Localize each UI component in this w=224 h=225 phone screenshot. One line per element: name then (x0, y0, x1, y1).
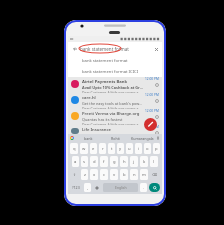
staticText: c (103, 172, 106, 178)
staticText: t (111, 146, 113, 152)
staticText: bank statement format (80, 46, 129, 52)
button[interactable]: d (90, 156, 98, 167)
staticText: o (146, 146, 149, 152)
staticText: s (83, 159, 86, 165)
staticText: k (143, 159, 146, 165)
button[interactable]: Preeti Verma via Bharge.org (68, 109, 162, 125)
staticText: , (87, 185, 89, 191)
staticText: z (84, 172, 86, 178)
button[interactable]: t (108, 143, 115, 154)
staticText: Dear Customer, A little one covers ago. … (82, 90, 143, 93)
button[interactable]: ⇧ (70, 169, 79, 180)
staticText: a (74, 159, 77, 165)
staticText: 12:00 PM (145, 93, 159, 97)
staticText: g (113, 159, 116, 165)
button[interactable]: bank (74, 136, 102, 141)
button[interactable]: j (130, 156, 138, 167)
staticText: Rohit (111, 136, 120, 141)
staticText: Kumarangala (131, 136, 154, 141)
staticText: Life Insurance (82, 127, 111, 133)
staticText: x (93, 172, 96, 178)
staticText: q (73, 146, 76, 152)
staticText: Preeti Verma via Bharge.org (82, 111, 140, 117)
staticText: 12:00 PM (145, 109, 159, 113)
staticText: l (153, 159, 155, 165)
staticText: v (113, 172, 116, 178)
button[interactable]: Voice input (93, 183, 101, 192)
button[interactable]: f (100, 156, 108, 167)
button[interactable]: x (90, 169, 98, 180)
staticText: n (133, 172, 136, 178)
button[interactable]: i (135, 143, 142, 154)
staticText: i (138, 146, 140, 152)
button[interactable]: care.hl (68, 93, 162, 109)
button[interactable]: Clear (153, 46, 159, 52)
button[interactable]: Back (71, 45, 78, 52)
staticText: ?123 (72, 185, 80, 190)
staticText: h (123, 159, 126, 165)
staticText: English (115, 185, 127, 190)
staticText: p (155, 146, 158, 152)
staticText: Dear Customer, A little one covers ago. … (82, 122, 143, 125)
button[interactable]: More suggestions (156, 136, 160, 140)
button[interactable]: , (84, 183, 91, 192)
button[interactable]: . (140, 183, 147, 192)
button[interactable]: g (110, 156, 118, 167)
staticText: u (128, 146, 131, 152)
button[interactable]: bank statement format ICICI (68, 66, 162, 77)
button[interactable]: u (126, 143, 133, 154)
button[interactable]: r (99, 143, 106, 154)
button[interactable]: Search (149, 183, 160, 192)
button[interactable]: y (117, 143, 124, 154)
staticText: y (119, 146, 122, 152)
button[interactable]: Kumarangala (129, 136, 156, 141)
staticText: ⌫ (152, 173, 158, 177)
button[interactable]: ?123 (70, 183, 82, 192)
button[interactable]: Rohit (102, 136, 129, 141)
button[interactable]: bank statement format (80, 46, 153, 52)
staticText: . (143, 185, 145, 191)
staticText: ⇧ (73, 173, 77, 177)
staticText: d (93, 159, 96, 165)
button[interactable]: s (81, 156, 88, 167)
button[interactable]: a (72, 156, 79, 167)
button[interactable]: Airtel Payments Bank (68, 77, 162, 93)
button[interactable]: p (153, 143, 160, 154)
staticText: care.hl (82, 95, 96, 101)
button[interactable]: h (120, 156, 128, 167)
staticText: b (123, 172, 126, 178)
button[interactable]: z (81, 169, 88, 180)
button[interactable]: c (100, 169, 108, 180)
button[interactable]: m (140, 169, 148, 180)
staticText: bank statement format ICICI (82, 69, 139, 75)
button[interactable]: v (110, 169, 118, 180)
staticText: bank statement format (82, 58, 128, 64)
button[interactable]: e (90, 143, 97, 154)
button[interactable]: l (150, 156, 158, 167)
staticText: m (142, 172, 146, 178)
staticText: 12:00 PM (145, 77, 159, 81)
staticText: bank (84, 136, 93, 141)
button[interactable]: w (80, 143, 88, 154)
staticText: Avail Upto 10% Cashback at Grocery (82, 85, 143, 90)
staticText: e (92, 146, 95, 152)
staticText: Get the easy tools at bank's power, beca… (82, 101, 143, 106)
staticText: Quantas has its fastest (82, 117, 123, 122)
button[interactable]: Compose (144, 118, 157, 131)
staticText: r (102, 146, 104, 152)
button[interactable]: n (130, 169, 138, 180)
staticText: Airtel Payments Bank (82, 79, 128, 85)
button[interactable]: q (70, 143, 78, 154)
staticText: 12:00 PM (145, 125, 159, 129)
staticText: Dear Customer, A little one covers ago. … (82, 106, 143, 109)
button[interactable]: k (140, 156, 148, 167)
staticText: j (133, 159, 135, 165)
button[interactable]: English (103, 183, 138, 192)
staticText: w (82, 146, 86, 152)
button[interactable]: ⌫ (150, 169, 160, 180)
button[interactable]: o (144, 143, 151, 154)
button[interactable]: Life Insurance (68, 125, 162, 134)
button[interactable]: b (120, 169, 128, 180)
button[interactable]: bank statement format (68, 55, 162, 66)
